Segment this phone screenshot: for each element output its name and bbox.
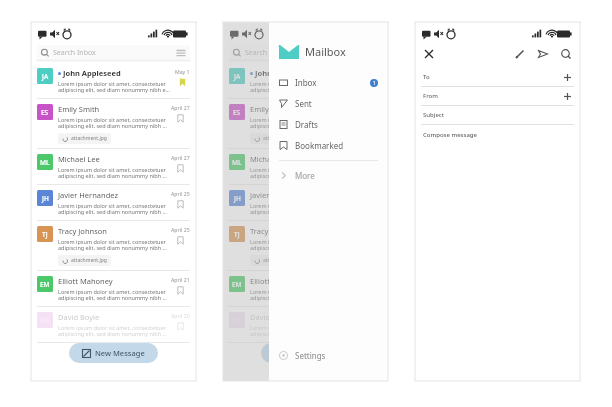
staticText: To (423, 73, 430, 81)
button[interactable]: ML (223, 149, 388, 185)
staticText: attachment.jpg (263, 257, 299, 264)
staticText: JH (42, 194, 49, 203)
other: Bookmark (177, 114, 184, 123)
staticText: Emily Smith (250, 104, 292, 114)
staticText: DB (40, 316, 50, 325)
staticText: New Message (95, 348, 145, 358)
staticText: attachment.jpg (263, 135, 299, 142)
staticText: Lorem ipsum dolor sit amet, consectetuer… (250, 324, 360, 338)
button[interactable]: EM (223, 271, 388, 307)
staticText: From (423, 92, 438, 100)
button[interactable]: attachment.jpg (250, 255, 303, 266)
staticText: EM (232, 280, 242, 289)
button[interactable]: attachment.jpg (58, 133, 111, 144)
staticText: TJ (234, 230, 240, 239)
other: Drafts (279, 120, 288, 129)
staticText: Settings (295, 350, 326, 361)
staticText: Javier Hernandez (58, 190, 118, 200)
button[interactable]: Edit (514, 48, 526, 60)
button[interactable]: More (269, 165, 388, 186)
button[interactable]: Compose message (415, 125, 580, 145)
button[interactable]: Drafts (269, 114, 388, 135)
button[interactable]: Settings (269, 350, 388, 381)
button[interactable]: DB (31, 307, 196, 343)
staticText: Compose message (423, 131, 478, 139)
staticText: Tracy Johnson (250, 226, 299, 236)
button[interactable]: Send (537, 48, 549, 60)
button[interactable]: attachment.jpg (58, 255, 111, 266)
other: Bookmark (177, 164, 184, 173)
staticText: April 25 (171, 226, 190, 233)
staticText: attachment.jpg (71, 257, 107, 264)
staticText: Lorem ipsum dolor sit amet, consectetuer… (58, 238, 168, 252)
other: Bookmark (177, 322, 184, 331)
staticText: attachment.jpg (71, 135, 107, 142)
staticText: Emily Smith (58, 104, 100, 114)
button[interactable]: ES (223, 99, 388, 149)
staticText: Michael Lee (250, 154, 292, 164)
button[interactable]: New Message (261, 343, 350, 363)
staticText: Lorem ipsum dolor sit amet, consectetuer… (58, 202, 168, 216)
staticText: Mailbox (305, 44, 346, 59)
staticText: Search Inbox (53, 48, 96, 58)
staticText: JA (234, 72, 241, 81)
staticText: Lorem ipsum dolor sit amet, consectetuer… (58, 288, 168, 302)
staticText: May 1 (175, 68, 190, 75)
button[interactable]: Bookmarked (269, 135, 388, 156)
other: Bookmarked (279, 141, 288, 150)
staticText: Javier Hernandez (250, 190, 310, 200)
staticText: Sent (295, 98, 312, 109)
staticText: Lorem ipsum dolor sit amet, consectetuer… (58, 116, 168, 130)
staticText: April 27 (171, 154, 190, 161)
staticText: Search Inbox (245, 48, 288, 58)
button[interactable]: Search Inbox (37, 45, 190, 60)
button[interactable]: To (415, 68, 580, 87)
button[interactable]: EM (31, 271, 196, 307)
other: Bookmark (177, 200, 184, 209)
other: Sent (279, 99, 288, 108)
button[interactable]: JA (31, 63, 196, 99)
other: Bookmark (177, 236, 184, 245)
staticText: Lorem ipsum dolor sit amet, consectetuer… (250, 202, 360, 216)
button[interactable]: Search (560, 48, 572, 60)
staticText: TJ (42, 230, 48, 239)
staticText: April 25 (171, 190, 190, 197)
staticText: EM (40, 280, 50, 289)
button[interactable]: JH (223, 185, 388, 221)
staticText: Inbox (295, 77, 317, 88)
other: Add recipient (563, 73, 572, 82)
button[interactable]: ML (31, 149, 196, 185)
other: Inbox (279, 78, 288, 87)
button[interactable]: New Message (69, 343, 158, 363)
staticText: More (295, 170, 315, 181)
button[interactable]: ES (31, 99, 196, 149)
button[interactable]: Inbox (269, 72, 388, 93)
button[interactable]: attachment.jpg (250, 133, 303, 144)
staticText: Lorem ipsum dolor sit amet, consectetuer… (58, 166, 168, 180)
staticText: ES (41, 108, 49, 117)
button[interactable]: From (415, 87, 580, 106)
button[interactable]: DB (223, 307, 388, 343)
button[interactable]: TJ (31, 221, 196, 271)
staticText: John Appleseed (63, 68, 121, 78)
staticText: JH (234, 194, 241, 203)
staticText: Drafts (295, 119, 318, 130)
button[interactable]: Close (423, 48, 435, 60)
button[interactable]: Sent (269, 93, 388, 114)
button[interactable]: Subject (415, 106, 580, 125)
staticText: Elliott Mahoney (250, 276, 305, 286)
staticText: 1 (373, 80, 376, 87)
staticText: JA (42, 72, 49, 81)
button[interactable]: JA (223, 63, 388, 99)
button[interactable]: JH (31, 185, 196, 221)
button[interactable]: TJ (223, 221, 388, 271)
staticText: April 27 (171, 104, 190, 111)
staticText: Lorem ipsum dolor sit amet, consectetuer… (250, 80, 364, 94)
button[interactable]: Search Inbox (229, 45, 382, 60)
